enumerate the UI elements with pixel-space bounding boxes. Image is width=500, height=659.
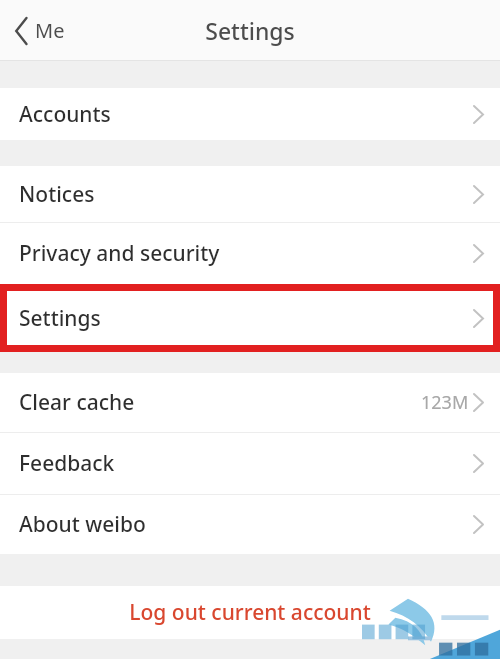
button[interactable]: Notices bbox=[0, 166, 500, 222]
staticText: Accounts bbox=[19, 100, 111, 129]
button[interactable]: Feedback bbox=[0, 433, 500, 494]
staticText: Settings bbox=[19, 304, 101, 333]
staticText: Me bbox=[35, 17, 65, 44]
staticText: Notices bbox=[19, 180, 95, 209]
staticText: Feedback bbox=[19, 449, 115, 478]
button[interactable]: Clear cache bbox=[0, 373, 500, 432]
button[interactable]: Settings bbox=[0, 284, 500, 352]
button[interactable]: Accounts bbox=[0, 88, 500, 140]
staticText: Settings bbox=[205, 15, 295, 46]
button[interactable]: Log out current account bbox=[0, 586, 500, 639]
staticText: Log out current account bbox=[129, 598, 371, 627]
staticText: 123M bbox=[421, 390, 469, 415]
staticText: Privacy and security bbox=[19, 239, 220, 268]
staticText: Clear cache bbox=[19, 388, 135, 417]
button[interactable]: Privacy and security bbox=[0, 223, 500, 284]
staticText: About weibo bbox=[19, 510, 146, 539]
other: Watermark bbox=[270, 573, 500, 659]
button[interactable]: Me bbox=[0, 0, 77, 61]
button[interactable]: About weibo bbox=[0, 495, 500, 554]
